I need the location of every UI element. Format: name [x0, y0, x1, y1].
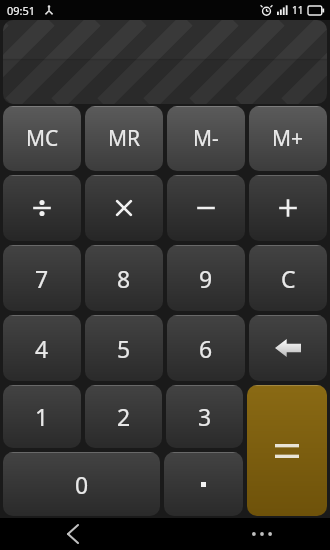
- button[interactable]: M+: [249, 106, 327, 171]
- staticText: 9: [199, 263, 213, 294]
- staticText: 09:51: [7, 3, 36, 18]
- staticText: 2: [117, 401, 131, 432]
- button[interactable]: M-: [167, 106, 245, 171]
- button[interactable]: Decimal point: [164, 452, 243, 516]
- staticText: 0: [75, 469, 89, 500]
- button[interactable]: 1: [3, 385, 81, 448]
- staticText: 1: [35, 401, 49, 432]
- button[interactable]: MC: [3, 106, 81, 171]
- staticText: 5: [117, 333, 131, 364]
- button[interactable]: Backspace: [249, 315, 327, 381]
- button[interactable]: 9: [167, 245, 245, 311]
- button[interactable]: C: [249, 245, 327, 311]
- staticText: C: [281, 263, 296, 294]
- button[interactable]: 2: [85, 385, 162, 448]
- staticText: 4: [35, 333, 49, 364]
- staticText: 7: [35, 263, 49, 294]
- staticText: M+: [272, 124, 304, 153]
- button[interactable]: Subtract: [167, 175, 245, 241]
- staticText: 11: [292, 3, 304, 17]
- staticText: MC: [26, 124, 59, 153]
- button[interactable]: 7: [3, 245, 81, 311]
- button[interactable]: More options: [242, 518, 282, 550]
- button[interactable]: Equals: [247, 385, 327, 516]
- button[interactable]: 3: [166, 385, 243, 448]
- staticText: 8: [117, 263, 131, 294]
- button[interactable]: Add: [249, 175, 327, 241]
- button[interactable]: 6: [167, 315, 245, 381]
- button[interactable]: 8: [85, 245, 163, 311]
- button[interactable]: Multiply: [85, 175, 163, 241]
- staticText: MR: [108, 124, 141, 153]
- button[interactable]: 4: [3, 315, 81, 381]
- button[interactable]: 0: [3, 452, 160, 516]
- button[interactable]: 5: [85, 315, 163, 381]
- button[interactable]: Back: [52, 518, 92, 550]
- staticText: 6: [199, 333, 213, 364]
- button[interactable]: Divide: [3, 175, 81, 241]
- button[interactable]: MR: [85, 106, 163, 171]
- staticText: M-: [193, 124, 219, 153]
- staticText: 3: [198, 401, 212, 432]
